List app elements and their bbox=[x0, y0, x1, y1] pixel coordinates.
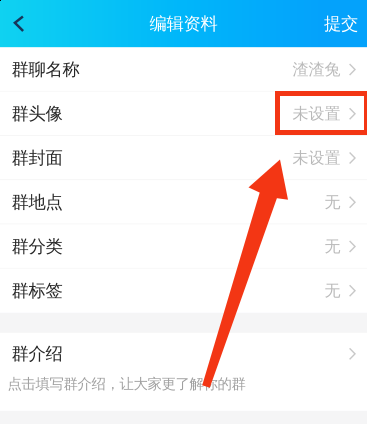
button[interactable]: 群标签 bbox=[0, 269, 367, 313]
button[interactable]: 群封面 bbox=[0, 136, 367, 180]
button[interactable]: 提交 bbox=[310, 0, 367, 47]
staticText: 编辑资料 bbox=[149, 13, 217, 34]
button[interactable]: 群头像 bbox=[0, 92, 367, 136]
button[interactable]: 群分类 bbox=[0, 224, 367, 269]
staticText: 群介绍 bbox=[11, 343, 62, 364]
staticText: 未设置 bbox=[293, 104, 341, 124]
button[interactable]: 群聊名称 bbox=[0, 47, 367, 92]
staticText: 未设置 bbox=[293, 148, 341, 168]
staticText: 群头像 bbox=[11, 103, 62, 124]
staticText: 群封面 bbox=[11, 147, 62, 169]
staticText: 渣渣兔 bbox=[293, 60, 341, 79]
staticText: 无 bbox=[325, 281, 341, 301]
button[interactable]: Back bbox=[0, 0, 34, 47]
staticText: 群分类 bbox=[11, 236, 62, 257]
button[interactable]: 群介绍 bbox=[0, 333, 367, 411]
staticText: 群地点 bbox=[11, 192, 62, 213]
staticText: 点击填写群介绍，让大家更了解你的群 bbox=[7, 375, 245, 393]
staticText: 无 bbox=[325, 237, 341, 256]
staticText: 提交 bbox=[324, 13, 358, 34]
button[interactable]: 群地点 bbox=[0, 180, 367, 224]
staticText: 群聊名称 bbox=[11, 59, 79, 80]
staticText: 群标签 bbox=[11, 280, 62, 301]
staticText: 无 bbox=[325, 192, 341, 212]
